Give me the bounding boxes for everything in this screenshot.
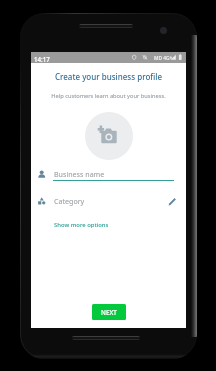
staticText: 14:17 — [34, 55, 50, 63]
staticText: Help customers learn about your business… — [31, 92, 186, 100]
button[interactable]: Edit category — [166, 195, 178, 207]
staticText: NEXT — [101, 308, 117, 317]
staticText: MD 4G+ — [154, 55, 173, 62]
button[interactable]: Show more options — [53, 219, 110, 231]
button[interactable]: Business name — [31, 167, 186, 185]
button[interactable]: Add business photo — [85, 112, 133, 160]
button[interactable]: Category — [31, 194, 186, 212]
button[interactable]: NEXT — [92, 304, 126, 320]
staticText: Show more options — [54, 221, 109, 229]
staticText: Business name — [54, 169, 105, 179]
staticText: Create your business profile — [31, 71, 186, 82]
staticText: Category — [54, 196, 85, 206]
